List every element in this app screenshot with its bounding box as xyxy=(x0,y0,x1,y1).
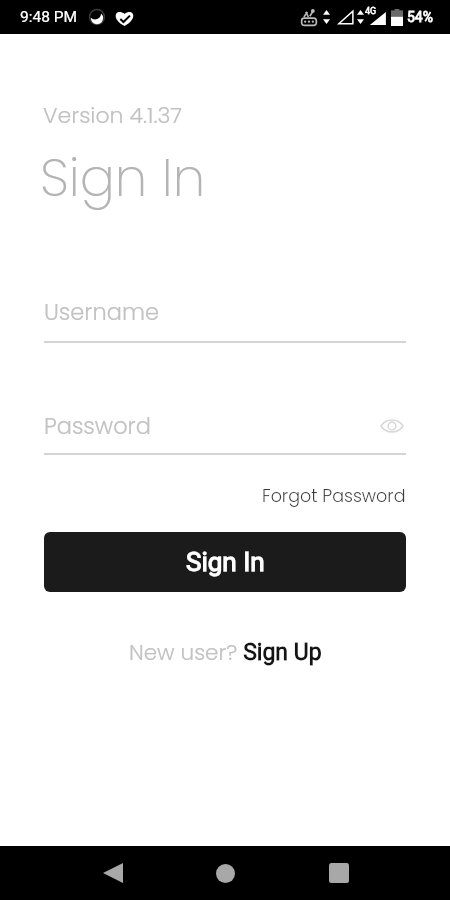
staticText: Password xyxy=(44,410,378,441)
staticText: New user? Sign Up xyxy=(129,637,322,667)
staticText: 54% xyxy=(407,9,433,25)
button[interactable]: Home xyxy=(197,846,254,900)
staticText: Forgot Password xyxy=(262,484,406,509)
staticText: Sign In xyxy=(40,141,206,214)
staticText: 4G xyxy=(365,6,377,17)
button[interactable]: Recent apps xyxy=(310,846,367,900)
staticText: Version 4.1.37 xyxy=(43,100,182,131)
staticText: Username xyxy=(44,296,159,327)
button[interactable]: Sign In xyxy=(44,532,406,592)
button[interactable]: Back xyxy=(84,846,141,900)
button[interactable]: Show password xyxy=(378,412,406,440)
staticText: Sign In xyxy=(186,547,265,577)
staticText: 9:48 PM xyxy=(20,8,78,26)
button[interactable]: Forgot Password xyxy=(262,484,406,509)
button[interactable]: New user? Sign Up xyxy=(129,637,322,667)
